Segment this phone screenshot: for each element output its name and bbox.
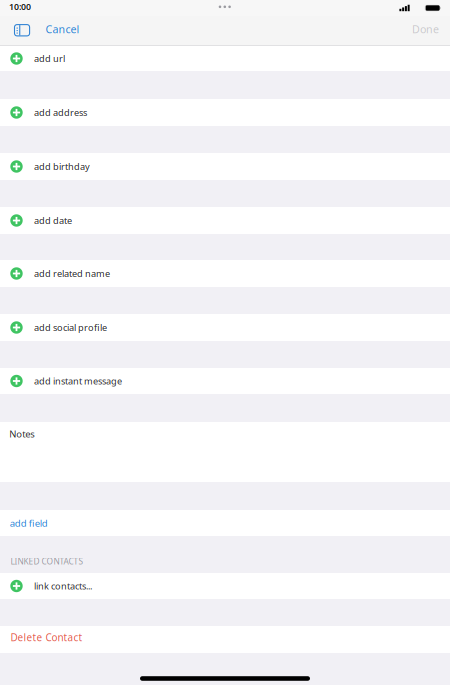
button[interactable]: add field — [0, 510, 450, 536]
staticText: add url — [34, 52, 65, 65]
button[interactable]: add date — [0, 207, 450, 234]
staticText: Done — [412, 22, 439, 36]
button[interactable]: add birthday — [0, 153, 450, 180]
staticText: Notes — [9, 427, 35, 440]
button[interactable]: Show sidebar — [0, 16, 39, 46]
button[interactable]: Done — [402, 16, 450, 46]
staticText: add related name — [34, 267, 110, 280]
staticText: add field — [10, 516, 48, 530]
button[interactable]: add social profile — [0, 314, 450, 341]
staticText: Cancel — [46, 22, 80, 36]
staticText: link contacts... — [34, 580, 92, 592]
button[interactable]: add instant message — [0, 368, 450, 394]
staticText: 10:00 — [9, 0, 31, 12]
staticText: add birthday — [34, 160, 90, 173]
button[interactable]: Cancel — [39, 16, 87, 46]
button[interactable]: add related name — [0, 260, 450, 287]
staticText: add date — [34, 214, 72, 227]
button[interactable]: Delete Contact — [0, 626, 450, 653]
staticText: Delete Contact — [10, 631, 82, 644]
button[interactable]: add url — [0, 46, 450, 71]
staticText: add social profile — [34, 321, 107, 334]
button[interactable]: add address — [0, 99, 450, 126]
staticText: add instant message — [34, 375, 122, 387]
button[interactable]: link contacts... — [0, 573, 450, 599]
staticText: LINKED CONTACTS — [10, 556, 83, 567]
staticText: add address — [34, 106, 87, 119]
